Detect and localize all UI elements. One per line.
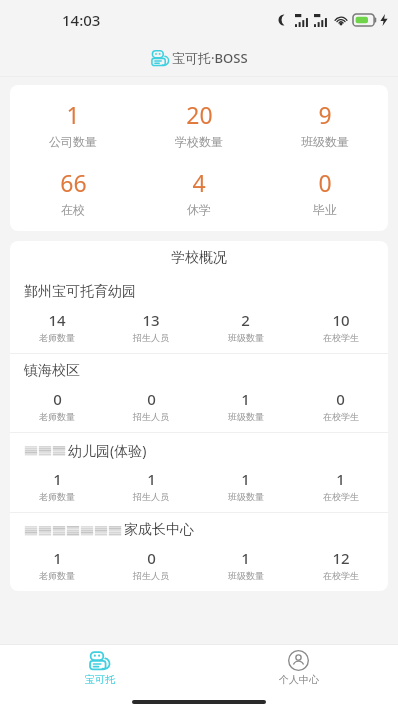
button[interactable]: 宝可托 xyxy=(0,645,199,691)
staticText: 休学 xyxy=(187,202,211,217)
staticText: 14:03 xyxy=(62,10,101,30)
button[interactable]: 家成长中心 xyxy=(10,513,388,591)
staticText: 0 xyxy=(147,389,156,409)
staticText: 学校概况 xyxy=(171,249,227,267)
staticText: 0 xyxy=(336,389,345,409)
button[interactable]: 20 xyxy=(136,99,262,149)
staticText: 班级数量 xyxy=(228,411,264,422)
staticText: 10 xyxy=(332,310,350,330)
staticText: 幼儿园(体验) xyxy=(68,441,147,460)
staticText: 0 xyxy=(53,389,62,409)
staticText: 1 xyxy=(241,469,250,489)
staticText: 66 xyxy=(60,167,87,198)
staticText: 招生人员 xyxy=(133,332,169,343)
staticText: 招生人员 xyxy=(133,411,169,422)
button[interactable]: 1 xyxy=(10,99,136,149)
button[interactable]: 鄞州宝可托育幼园 xyxy=(10,275,388,353)
staticText: 13 xyxy=(142,310,160,330)
button[interactable]: 镇海校区 xyxy=(10,354,388,432)
staticText: 班级数量 xyxy=(301,134,349,149)
button[interactable]: 4 xyxy=(136,167,262,217)
staticText: 0 xyxy=(318,167,332,198)
staticText: 2 xyxy=(241,310,250,330)
staticText: 公司数量 xyxy=(49,134,97,149)
staticText: 1 xyxy=(241,548,250,568)
staticText: 宝可托 xyxy=(85,673,115,686)
staticText: 个人中心 xyxy=(279,673,319,686)
staticText: 14 xyxy=(48,310,66,330)
button[interactable]: 幼儿园(体验) xyxy=(10,433,388,512)
staticText: 1 xyxy=(53,548,62,568)
staticText: 1 xyxy=(66,99,80,130)
staticText: 班级数量 xyxy=(228,491,264,502)
staticText: 1 xyxy=(241,389,250,409)
staticText: 老师数量 xyxy=(39,332,75,343)
staticText: 20 xyxy=(186,99,213,130)
staticText: 在校学生 xyxy=(323,491,359,502)
staticText: 在校学生 xyxy=(323,411,359,422)
staticText: 家成长中心 xyxy=(124,521,194,539)
staticText: 学校数量 xyxy=(175,134,223,149)
staticText: 在校学生 xyxy=(323,570,359,581)
staticText: 招生人员 xyxy=(133,570,169,581)
staticText: 0 xyxy=(147,548,156,568)
staticText: 班级数量 xyxy=(228,570,264,581)
staticText: 1 xyxy=(53,469,62,489)
button[interactable]: 0 xyxy=(262,167,388,217)
staticText: 老师数量 xyxy=(39,411,75,422)
staticText: 鄞州宝可托育幼园 xyxy=(24,283,136,301)
staticText: 镇海校区 xyxy=(24,362,80,380)
button[interactable]: 9 xyxy=(262,99,388,149)
staticText: 1 xyxy=(336,469,345,489)
staticText: 宝可托·BOSS xyxy=(172,49,248,67)
staticText: 班级数量 xyxy=(228,332,264,343)
staticText: 12 xyxy=(332,548,350,568)
staticText: 9 xyxy=(318,99,332,130)
staticText: 招生人员 xyxy=(133,491,169,502)
staticText: 老师数量 xyxy=(39,570,75,581)
staticText: 1 xyxy=(147,469,156,489)
staticText: 老师数量 xyxy=(39,491,75,502)
staticText: 在校 xyxy=(61,202,85,217)
staticText: 4 xyxy=(192,167,206,198)
staticText: 毕业 xyxy=(313,202,337,217)
button[interactable]: 66 xyxy=(10,167,136,217)
button[interactable]: 个人中心 xyxy=(199,645,398,691)
staticText: 在校学生 xyxy=(323,332,359,343)
